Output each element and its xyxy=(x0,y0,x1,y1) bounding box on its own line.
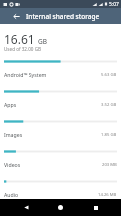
staticText: 16.61 xyxy=(4,31,35,47)
staticText: Apps xyxy=(4,101,17,108)
staticText: Used of 32.00 GB xyxy=(4,46,41,52)
staticText: Images xyxy=(4,131,23,138)
staticText: 3.52 GB xyxy=(101,102,117,108)
button[interactable]: Navigate up xyxy=(8,8,24,24)
staticText: 5:07 xyxy=(109,1,119,8)
staticText: 14.26 MB xyxy=(98,192,117,198)
button[interactable]: Back xyxy=(18,199,35,216)
button[interactable]: Recent apps xyxy=(87,199,104,216)
staticText: Internal shared storage xyxy=(26,12,100,21)
staticText: Audio xyxy=(4,191,19,198)
staticText: 5.63 GB xyxy=(101,72,117,78)
staticText: Videos xyxy=(4,161,21,168)
button[interactable]: Apps xyxy=(0,86,121,116)
staticText: 1.85 GB xyxy=(101,132,117,138)
button[interactable]: Android™ System xyxy=(0,56,121,86)
button[interactable]: Videos xyxy=(0,146,121,176)
button[interactable]: Audio xyxy=(0,176,121,206)
staticText: 203 MB xyxy=(102,162,117,168)
staticText: GB xyxy=(38,37,47,46)
staticText: Android™ System xyxy=(4,71,47,78)
button[interactable]: Images xyxy=(0,116,121,146)
button[interactable]: Home xyxy=(52,199,69,216)
